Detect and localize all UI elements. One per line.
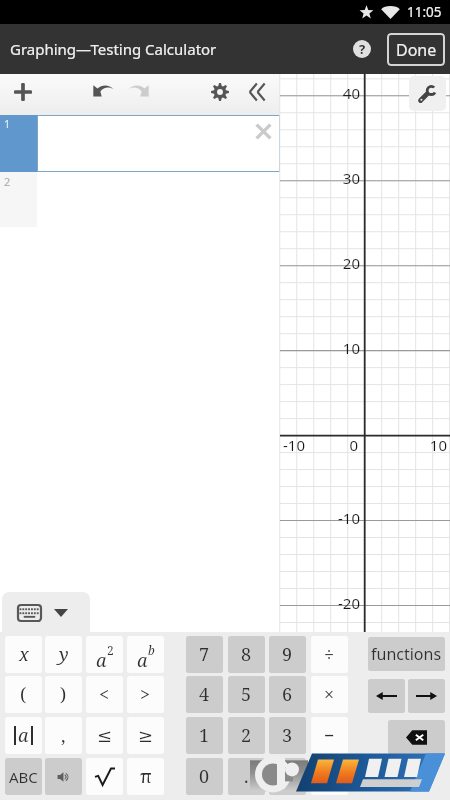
button[interactable]: < [86,676,123,713]
staticText: 1 [4,116,11,131]
button[interactable]: Sound [45,758,82,795]
staticText: a [96,648,107,673]
staticText: -10 [332,508,360,528]
staticText: -10 [283,435,305,455]
button[interactable]: 1 [186,717,223,754]
button[interactable]: 4 [186,676,223,713]
button[interactable]: Toggle keyboard [2,592,90,633]
staticText: 2 [4,174,11,189]
button[interactable]: (-) [269,758,306,795]
staticText: π [140,764,152,789]
button[interactable]: functions [368,637,445,671]
button[interactable]: Collapse panel [238,76,274,114]
button[interactable]: 3 [269,717,306,754]
button[interactable]: 0 [186,758,223,795]
staticText: 8 [241,642,252,667]
staticText: 30 [332,168,360,188]
staticText: Done [396,39,437,61]
button[interactable]: . [228,758,265,795]
staticText: 7 [199,642,210,667]
button[interactable]: ABC [5,758,42,795]
staticText: (-) [280,767,296,787]
staticText: 2 [241,723,252,748]
button[interactable]: 2 [228,717,265,754]
button[interactable]: Settings [202,76,238,114]
button[interactable]: − [311,717,348,754]
staticText: a [137,648,148,673]
staticText: − [324,723,335,748]
button[interactable]: a [127,636,164,673]
staticText: 3 [282,723,293,748]
staticText: 10 [429,435,447,455]
staticText: ≤ [97,725,113,746]
button[interactable]: ≥ [127,717,164,754]
button[interactable]: Backspace [388,720,445,754]
button[interactable]: Redo [121,76,157,114]
button[interactable]: + [311,758,348,795]
staticText: -20 [332,593,360,613]
button[interactable]: Clear expression [248,116,279,147]
staticText: × [324,682,335,707]
button[interactable]: a [86,636,123,673]
button[interactable]: ) [45,676,82,713]
button[interactable]: 7 [186,636,223,673]
button[interactable] [86,758,123,795]
button[interactable]: × [311,676,348,713]
button[interactable]: 6 [269,676,306,713]
staticText: 0 [199,764,210,789]
button[interactable]: x [5,636,42,673]
staticText: 10 [332,338,360,358]
staticText: a [18,723,29,748]
button[interactable]: 8 [228,636,265,673]
staticText: 20 [332,253,360,273]
button[interactable]: ÷ [311,636,348,673]
staticText: 4 [199,682,210,707]
staticText: 0 [342,435,358,455]
button[interactable]: Add expression [5,76,41,114]
button[interactable]: Undo [85,76,121,114]
button[interactable]: ( [5,676,42,713]
staticText: 5 [241,682,252,707]
staticText: 1 [199,723,210,748]
staticText: 2 [107,642,114,658]
staticText: ) [60,682,67,707]
staticText: x [19,642,29,667]
button[interactable]: 5 [228,676,265,713]
staticText: < [99,682,110,707]
staticText: 40 [332,83,360,103]
staticText: . [244,764,249,789]
staticText: 9 [282,642,293,667]
button[interactable]: Done [387,33,445,66]
staticText: functions [371,643,442,665]
button[interactable]: Left [368,679,405,713]
staticText: , [61,723,66,748]
staticText: y [59,642,69,667]
staticText: ≥ [138,725,154,746]
staticText: 11:05 [407,3,442,21]
button[interactable]: π [127,758,164,795]
staticText: ABC [9,767,38,787]
staticText: Graphing—Testing Calculator [10,39,217,59]
button[interactable]: a [5,717,42,754]
button[interactable]: Help [344,31,380,67]
button[interactable]: Graph settings [409,76,446,111]
button[interactable]: > [127,676,164,713]
staticText: + [324,764,335,789]
staticText: ? [359,40,366,58]
button[interactable]: 9 [269,636,306,673]
staticText: b [148,642,155,658]
button[interactable]: , [45,717,82,754]
button[interactable]: ≤ [86,717,123,754]
button[interactable]: Right [408,679,445,713]
button[interactable]: y [45,636,82,673]
staticText: ÷ [324,642,335,667]
staticText: > [140,682,151,707]
staticText: ( [20,682,27,707]
staticText: 6 [282,682,293,707]
